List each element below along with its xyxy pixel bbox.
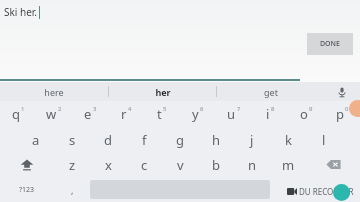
button[interactable]: l [306,127,342,152]
staticText: g [176,131,184,149]
staticText: w [46,105,57,123]
button[interactable]: n [234,152,270,177]
staticText: 1 [21,105,25,113]
staticText: 3 [93,105,97,113]
button[interactable]: DONE [307,33,353,55]
button[interactable]: s [54,127,90,152]
staticText: h [212,131,221,149]
button[interactable]: get [217,82,324,101]
button[interactable]: h [198,127,234,152]
staticText: p [336,105,344,123]
button[interactable]: Shift [0,152,54,177]
staticText: e [84,105,92,123]
button[interactable]: here [0,82,108,101]
button[interactable]: o [288,101,324,127]
button[interactable]: j [234,127,270,152]
button[interactable]: , [54,177,90,202]
staticText: a [32,131,40,149]
staticText: 2 [58,105,62,113]
button[interactable]: Backspace [306,152,360,177]
button[interactable]: e [72,101,108,127]
button[interactable]: Voice input [324,82,360,101]
staticText: t [157,105,162,123]
staticText: 5 [163,105,167,113]
button[interactable]: r [108,101,144,127]
staticText: Ski her. [4,5,38,19]
staticText: j [250,131,254,149]
button[interactable]: k [270,127,306,152]
staticText: DU RECORDER [299,186,354,197]
button[interactable]: v [162,152,198,177]
staticText: q [12,105,20,123]
button[interactable]: i [252,101,288,127]
button[interactable]: a [18,127,54,152]
staticText: d [104,131,112,149]
button[interactable]: z [54,152,90,177]
button[interactable]: Ski her. [4,5,40,19]
staticText: 6 [200,105,204,113]
staticText: z [69,156,76,174]
button[interactable]: ?123 [0,177,54,202]
staticText: 0 [345,105,349,113]
staticText: 8 [271,105,275,113]
staticText: ?123 [19,185,35,195]
button[interactable]: b [198,152,234,177]
staticText: c [141,156,148,174]
button[interactable]: c [126,152,162,177]
staticText: her [155,86,171,98]
button[interactable]: Floating bubble [349,100,360,117]
staticText: b [212,156,220,174]
button[interactable]: Recorder [333,184,350,201]
button[interactable]: d [90,127,126,152]
staticText: here [44,86,64,98]
staticText: 9 [309,105,313,113]
button[interactable] [270,177,360,202]
staticText: get [264,86,278,98]
button[interactable]: u [216,101,252,127]
staticText: v [177,156,184,174]
button[interactable]: w [36,101,72,127]
button[interactable]: her [109,82,216,101]
staticText: u [227,105,236,123]
staticText: o [300,105,308,123]
button[interactable]: p [324,101,360,127]
staticText: DONE [320,39,340,49]
button[interactable]: x [90,152,126,177]
button[interactable]: m [270,152,306,177]
staticText: , [71,184,74,196]
staticText: n [248,156,257,174]
staticText: s [69,131,76,149]
button[interactable]: q [0,101,36,127]
staticText: m [282,156,295,174]
staticText: f [142,131,147,149]
staticText: k [285,131,292,149]
staticText: l [322,131,326,149]
button[interactable]: f [126,127,162,152]
staticText: y [192,105,199,123]
staticText: 4 [128,105,132,113]
staticText: x [105,156,112,174]
button[interactable]: y [180,101,216,127]
staticText: i [266,105,270,123]
staticText: 7 [237,105,241,113]
button[interactable]: t [144,101,180,127]
staticText: r [121,105,127,123]
button[interactable]: g [162,127,198,152]
